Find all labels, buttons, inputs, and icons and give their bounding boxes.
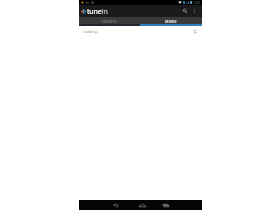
button[interactable]: Home <box>134 200 150 210</box>
staticText: Loading... <box>83 29 100 34</box>
staticText: in <box>102 6 108 16</box>
button[interactable]: Back <box>107 200 123 210</box>
button[interactable]: Recent apps <box>158 200 174 210</box>
button[interactable]: FAVORITES <box>79 17 140 26</box>
button[interactable]: Search <box>179 5 190 17</box>
staticText: FAVORITES <box>102 20 117 24</box>
staticText: tune <box>87 6 102 16</box>
button[interactable]: BROWSE <box>140 17 202 26</box>
staticText: 1:23 <box>193 0 200 5</box>
staticText: BROWSE <box>165 20 177 24</box>
button[interactable]: More options <box>190 5 199 17</box>
